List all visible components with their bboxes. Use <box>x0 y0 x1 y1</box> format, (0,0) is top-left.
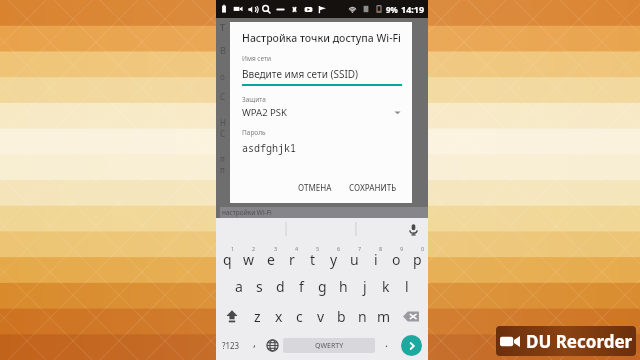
button[interactable]: 7 <box>344 240 365 271</box>
staticText: С <box>220 91 226 102</box>
staticText: С <box>220 128 226 139</box>
staticText: r <box>289 250 295 269</box>
staticText: , <box>253 335 256 350</box>
staticText: l <box>405 277 409 296</box>
staticText: n <box>358 307 367 326</box>
button[interactable]: 1 <box>216 240 238 271</box>
staticText: 6 <box>337 245 341 252</box>
button[interactable]: WPA2 PSK <box>242 106 402 119</box>
staticText: o <box>392 250 401 269</box>
button[interactable]: c <box>289 301 310 331</box>
button[interactable]: v <box>310 301 331 331</box>
button[interactable]: m <box>373 301 394 331</box>
button[interactable]: Change keyboard language <box>263 331 281 360</box>
staticText: ?123 <box>222 340 240 351</box>
button[interactable]: l <box>396 271 417 301</box>
staticText: Введите имя сети (SSID) <box>242 67 359 81</box>
staticText: 0 <box>421 245 425 252</box>
staticText: п <box>220 153 225 164</box>
button[interactable]: ?123 <box>216 331 245 360</box>
staticText: 2 <box>252 245 256 252</box>
staticText: СОХРАНИТЬ <box>349 182 397 193</box>
staticText: s <box>256 277 263 296</box>
button[interactable]: ОТМЕНА <box>293 179 337 196</box>
staticText: 9 <box>400 245 404 252</box>
button[interactable]: Shift <box>216 301 247 331</box>
staticText: Имя сети <box>242 54 272 63</box>
button[interactable]: QWERTY <box>283 338 375 353</box>
staticText: z <box>254 307 261 326</box>
staticText: 1 <box>231 245 235 252</box>
staticText: u <box>350 250 359 269</box>
staticText: x <box>275 307 283 326</box>
staticText: . <box>385 335 388 350</box>
button[interactable]: Backspace <box>394 301 428 331</box>
staticText: f <box>299 277 304 296</box>
button[interactable]: f <box>291 271 312 301</box>
button[interactable]: d <box>270 271 291 301</box>
staticText: WPA2 PSK <box>242 106 393 119</box>
button[interactable]: 3 <box>260 240 281 271</box>
staticText: y <box>330 250 338 269</box>
staticText: 3 <box>274 245 278 252</box>
staticText: e <box>267 250 275 269</box>
staticText: i <box>374 250 378 269</box>
staticText: v <box>317 307 325 326</box>
button[interactable]: h <box>333 271 354 301</box>
button[interactable]: 0 <box>407 240 428 271</box>
staticText: 14:19 <box>401 3 425 15</box>
staticText: g <box>318 277 327 296</box>
staticText: п <box>220 164 225 175</box>
staticText: Пароль <box>242 128 266 137</box>
staticText: p <box>413 250 422 269</box>
staticText: 4 <box>295 245 299 252</box>
staticText: 5 <box>316 245 320 252</box>
button[interactable]: , <box>245 331 263 360</box>
staticText: c <box>296 307 303 326</box>
staticText: 8 <box>379 245 383 252</box>
button[interactable]: 5 <box>302 240 323 271</box>
button[interactable]: СОХРАНИТЬ <box>344 179 402 196</box>
staticText: Защита <box>242 95 266 104</box>
staticText: 9% <box>386 4 398 15</box>
button[interactable]: 6 <box>323 240 344 271</box>
button[interactable]: 9 <box>386 240 407 271</box>
staticText: w <box>243 250 255 269</box>
button[interactable]: z <box>247 301 268 331</box>
staticText: Настройка точки доступа Wi-Fi <box>242 31 401 45</box>
button[interactable]: 2 <box>238 240 260 271</box>
staticText: asdfghjk1 <box>242 141 296 155</box>
button[interactable]: k <box>375 271 396 301</box>
button[interactable]: g <box>312 271 333 301</box>
staticText: настройки Wi-Fi <box>222 208 272 217</box>
button[interactable]: n <box>352 301 373 331</box>
staticText: m <box>377 307 391 326</box>
button[interactable]: . <box>377 331 395 360</box>
button[interactable]: b <box>331 301 352 331</box>
button[interactable]: x <box>268 301 289 331</box>
button[interactable]: Voice input <box>405 221 421 237</box>
staticText: ОТМЕНА <box>298 182 332 193</box>
button[interactable]: j <box>354 271 375 301</box>
other: Expand security options <box>393 108 402 117</box>
staticText: d <box>276 277 285 296</box>
staticText: q <box>223 250 232 269</box>
button[interactable]: 8 <box>365 240 386 271</box>
staticText: Н <box>220 117 226 128</box>
staticText: b <box>337 307 346 326</box>
staticText: QWERTY <box>315 341 344 351</box>
button[interactable]: Enter <box>401 335 422 356</box>
staticText: k <box>382 277 390 296</box>
staticText: h <box>339 277 348 296</box>
staticText: t <box>310 250 316 269</box>
staticText: Т <box>220 21 226 33</box>
staticText: DU Recorder <box>526 330 633 353</box>
staticText: о <box>220 71 225 82</box>
staticText: a <box>235 277 243 296</box>
button[interactable]: a <box>228 271 249 301</box>
staticText: 7 <box>358 245 362 252</box>
button[interactable]: 4 <box>281 240 302 271</box>
staticText: В <box>220 44 226 56</box>
button[interactable]: s <box>249 271 270 301</box>
staticText: j <box>363 277 367 296</box>
